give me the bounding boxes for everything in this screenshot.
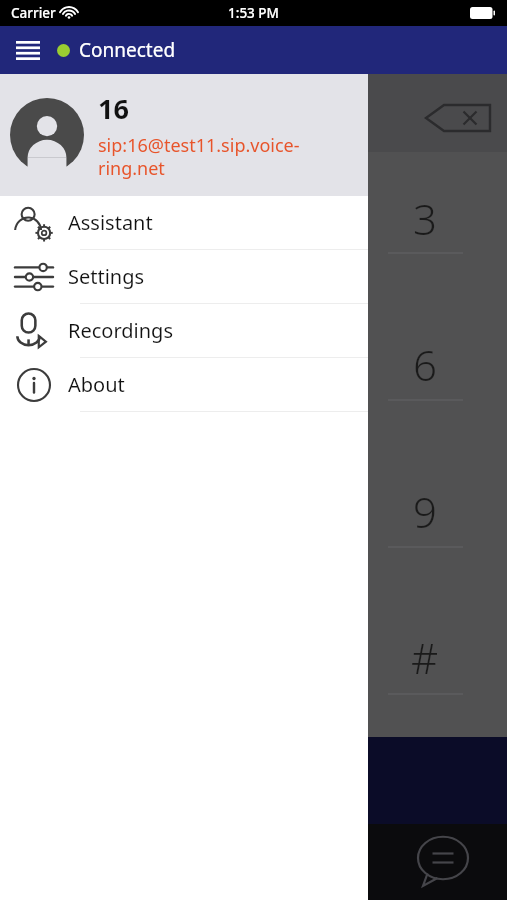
staticText: Settings <box>68 263 145 290</box>
button[interactable]: 9 <box>391 483 459 539</box>
button[interactable]: Settings <box>0 250 368 304</box>
staticText: sip:16@test11.sip.voice-ring.net <box>98 133 320 180</box>
button[interactable]: About <box>0 358 368 412</box>
staticText: 16 <box>98 90 129 127</box>
button[interactable]: Assistant <box>0 196 368 250</box>
button[interactable]: # <box>391 629 459 685</box>
staticText: 1:53 PM <box>228 4 279 22</box>
staticText: 9 <box>413 483 437 539</box>
staticText: About <box>68 371 125 398</box>
staticText: Carrier <box>11 4 56 22</box>
button[interactable]: 6 <box>391 336 459 392</box>
button[interactable]: Open navigation menu <box>10 32 46 68</box>
staticText: 6 <box>413 336 437 392</box>
staticText: 3 <box>413 190 437 246</box>
staticText: Assistant <box>68 209 153 236</box>
button[interactable]: 16 <box>0 74 368 196</box>
button[interactable]: Recordings <box>0 304 368 358</box>
staticText: Connected <box>79 37 176 63</box>
staticText: Recordings <box>68 317 173 344</box>
staticText: # <box>411 629 439 685</box>
button[interactable]: 3 <box>391 190 459 246</box>
